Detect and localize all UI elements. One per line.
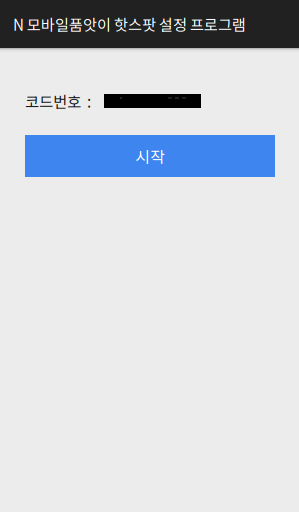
button[interactable]: 시작 [25, 135, 275, 177]
staticText: N 모바일품앗이 핫스팟 설정 프로그램 [13, 13, 246, 35]
staticText: 시작 [135, 144, 165, 168]
button[interactable]: 코드번호 입력 [104, 94, 201, 108]
staticText: 코드번호 : [25, 90, 91, 112]
